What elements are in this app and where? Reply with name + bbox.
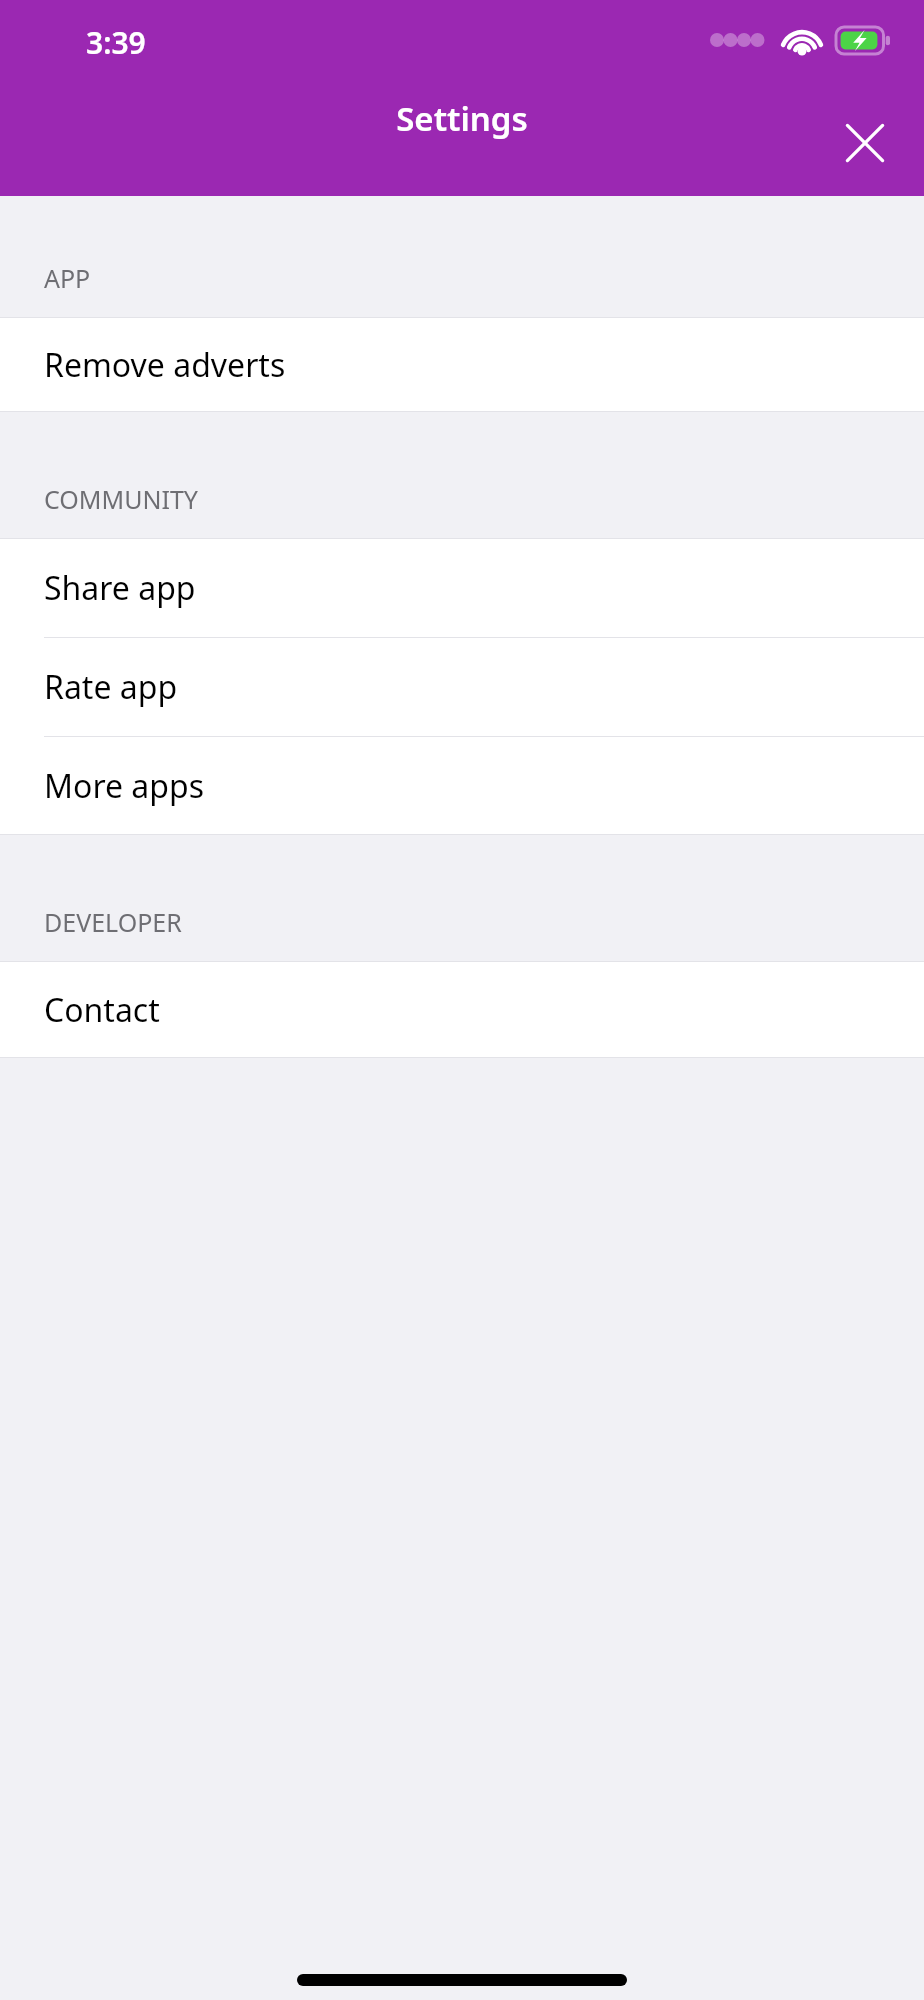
staticText: Rate app <box>44 665 178 709</box>
button[interactable]: More apps <box>0 737 924 834</box>
button[interactable]: Rate app <box>0 638 924 736</box>
staticText: Contact <box>44 988 160 1032</box>
staticText: COMMUNITY <box>44 482 198 516</box>
staticText: 3:39 <box>86 22 146 63</box>
staticText: More apps <box>44 764 204 808</box>
staticText: Settings <box>0 96 924 141</box>
staticText: Remove adverts <box>44 343 286 387</box>
button[interactable]: Contact <box>0 962 924 1057</box>
staticText: APP <box>44 261 91 295</box>
button[interactable]: Share app <box>0 539 924 637</box>
button[interactable]: Close <box>822 100 908 186</box>
staticText: Share app <box>44 566 196 610</box>
staticText: DEVELOPER <box>44 905 182 939</box>
button[interactable]: Remove adverts <box>0 318 924 411</box>
